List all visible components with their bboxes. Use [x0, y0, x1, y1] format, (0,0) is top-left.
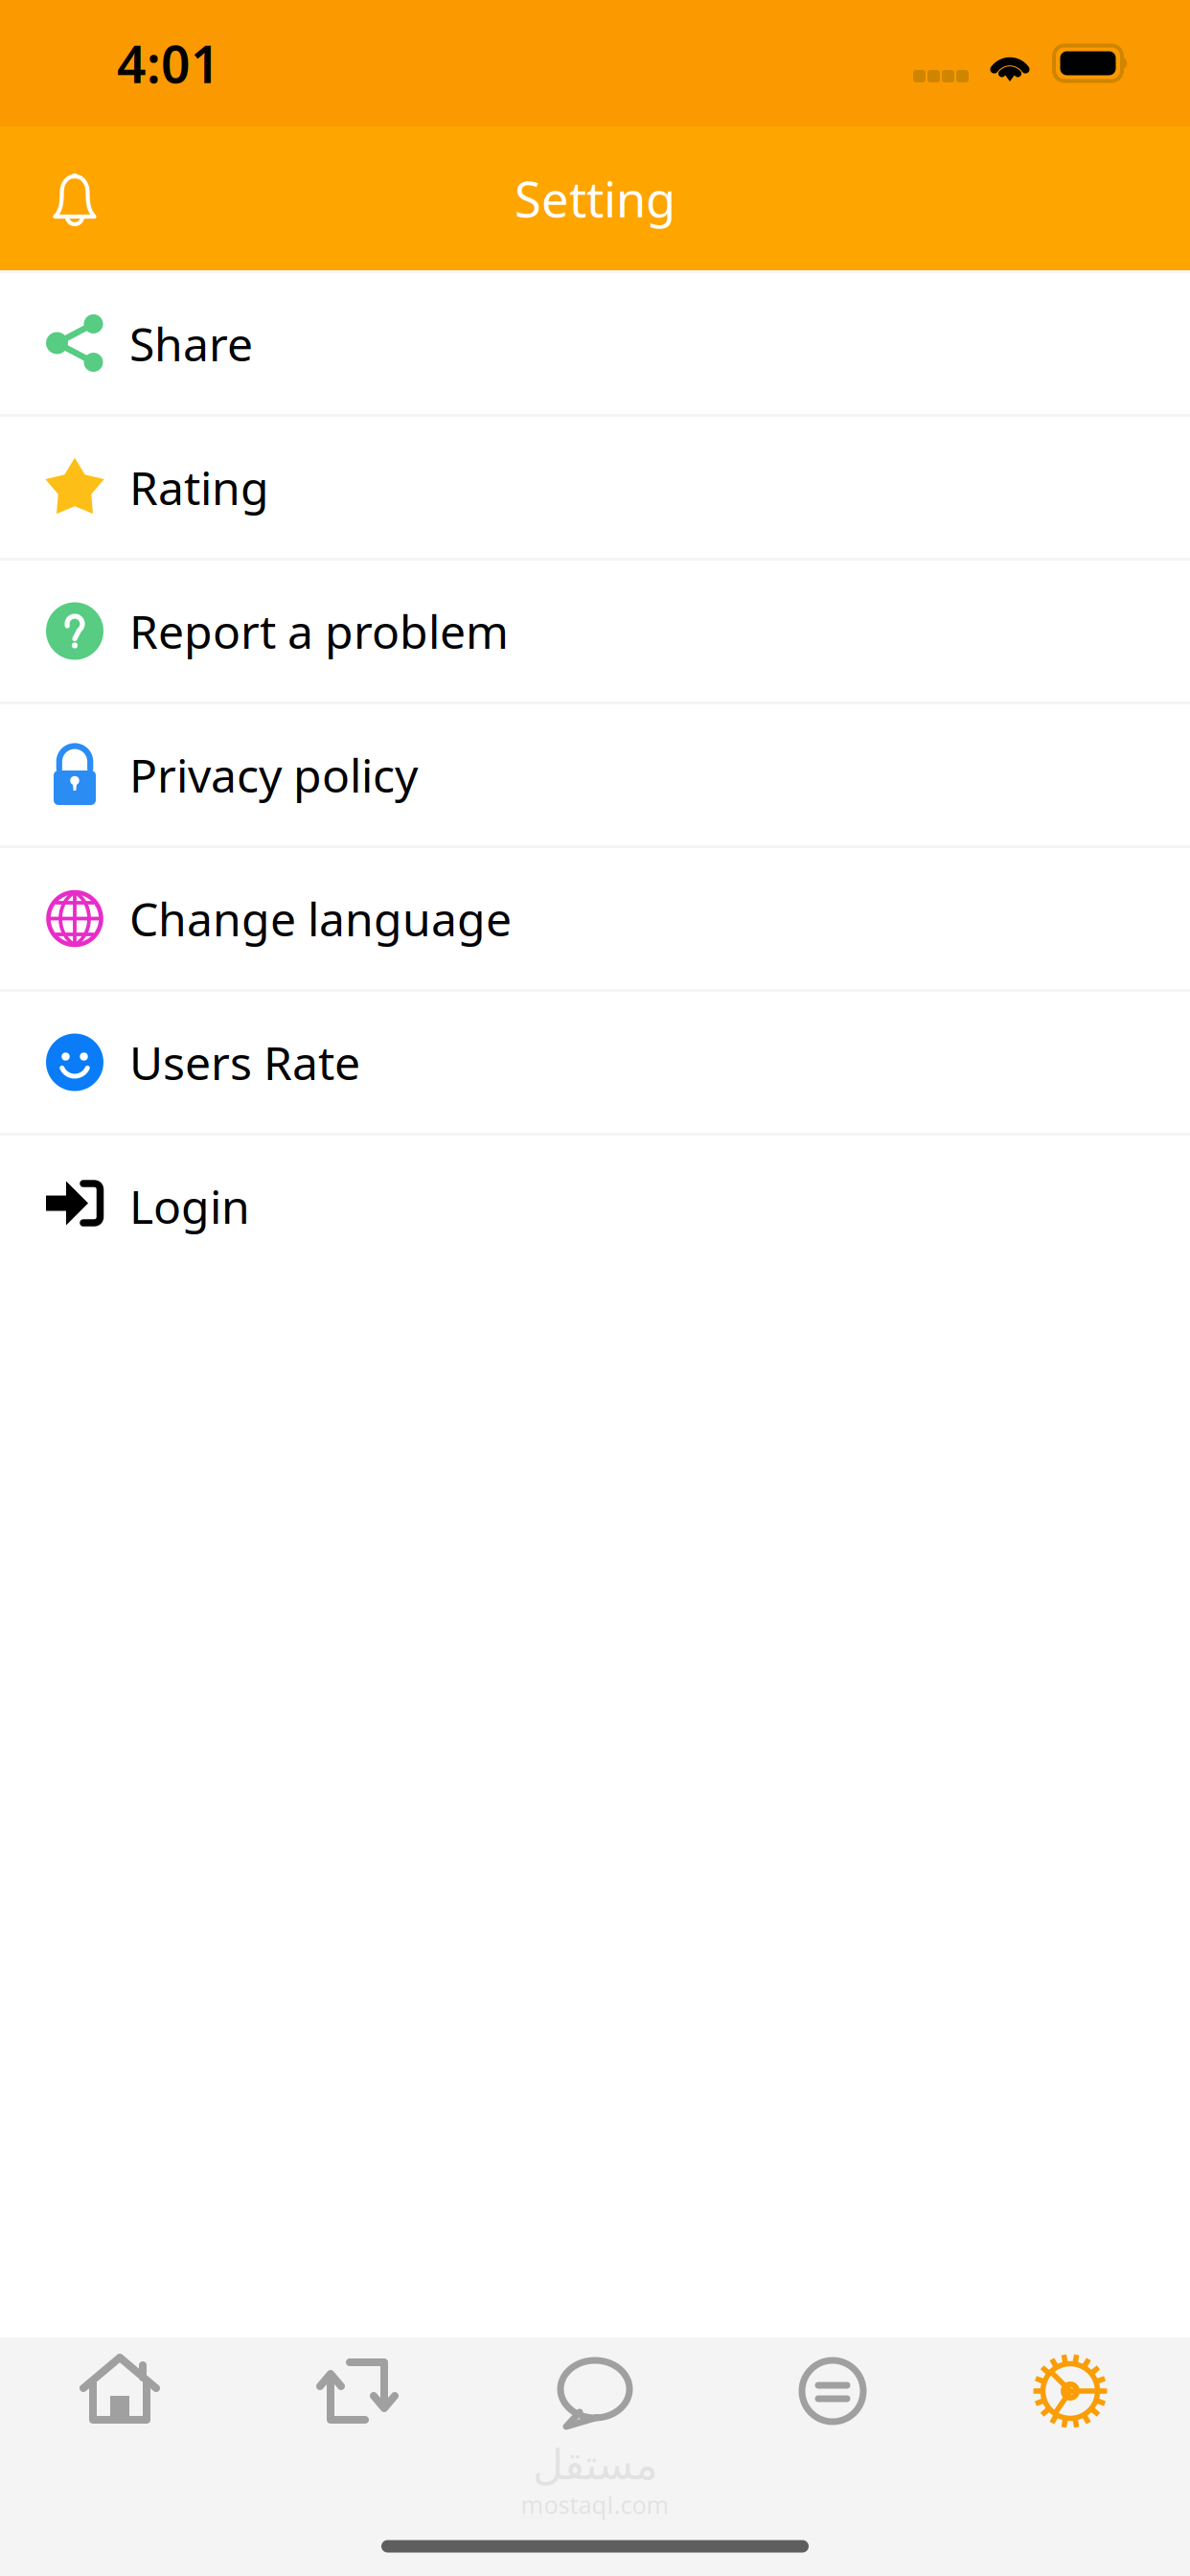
button[interactable]: Home [1, 2340, 239, 2442]
button[interactable]: Change language [0, 848, 1190, 989]
staticText: Rating [129, 457, 269, 518]
button[interactable]: Report a problem [0, 561, 1190, 701]
button[interactable]: Rating [0, 417, 1190, 558]
button[interactable]: Menu [714, 2340, 951, 2442]
button[interactable]: Transfers [239, 2340, 476, 2442]
staticText: Users Rate [129, 1032, 360, 1093]
button[interactable]: Share [0, 273, 1190, 414]
button[interactable]: Settings [951, 2340, 1189, 2442]
staticText: Login [129, 1175, 250, 1237]
staticText: mostaql.com [521, 2488, 669, 2521]
button[interactable]: Notifications [23, 146, 126, 251]
staticText: Share [129, 313, 253, 374]
button[interactable]: Users Rate [0, 992, 1190, 1133]
staticText: مستقل [532, 2441, 658, 2488]
staticText: Change language [129, 888, 512, 949]
staticText: Report a problem [129, 600, 509, 662]
staticText: Setting [515, 166, 675, 231]
button[interactable]: Messages [476, 2340, 714, 2442]
staticText: 4:01 [117, 29, 220, 97]
button[interactable]: Privacy policy [0, 704, 1190, 845]
staticText: Privacy policy [129, 744, 418, 805]
button[interactable]: Login [0, 1136, 1190, 1276]
